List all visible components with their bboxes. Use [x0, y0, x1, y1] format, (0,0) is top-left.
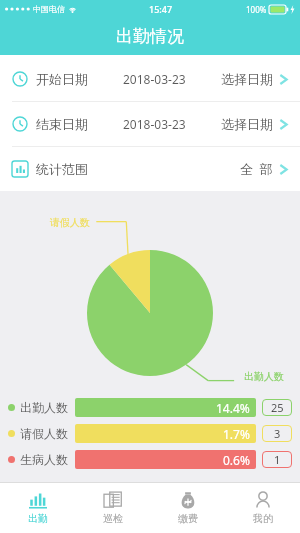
staticText: 选择日期: [221, 71, 273, 87]
staticText: 巡检: [103, 512, 123, 525]
staticText: 出勤人数: [244, 370, 284, 383]
staticText: 1.7%: [223, 426, 250, 442]
button[interactable]: 开始日期: [0, 57, 300, 101]
staticText: 3: [274, 426, 281, 441]
staticText: 2018-03-23: [123, 71, 186, 87]
staticText: 2018-03-23: [123, 116, 186, 132]
staticText: 25: [271, 400, 284, 415]
staticText: 出勤人数: [20, 400, 68, 415]
button[interactable]: 我的: [225, 483, 300, 533]
staticText: 请假人数: [20, 426, 68, 441]
staticText: 我的: [253, 512, 273, 525]
button[interactable]: 结束日期: [0, 102, 300, 146]
staticText: 请假人数: [50, 216, 90, 229]
button[interactable]: 巡检: [75, 483, 150, 533]
staticText: 出勤情况: [116, 26, 184, 47]
staticText: 生病人数: [20, 452, 68, 467]
staticText: 0.6%: [223, 452, 250, 468]
staticText: 中国电信: [33, 4, 65, 14]
staticText: 全 部: [240, 160, 273, 178]
button[interactable]: 统计范围: [0, 147, 300, 191]
staticText: 1: [274, 452, 281, 467]
staticText: 缴费: [178, 512, 198, 525]
staticText: 出勤: [28, 512, 48, 525]
staticText: 开始日期: [36, 71, 88, 87]
staticText: 选择日期: [221, 116, 273, 132]
button[interactable]: 出勤人数: [8, 397, 292, 418]
staticText: 100%: [246, 4, 267, 15]
button[interactable]: 生病人数: [8, 449, 292, 470]
button[interactable]: 请假人数: [8, 423, 292, 444]
staticText: 统计范围: [36, 161, 88, 177]
button[interactable]: 缴费: [150, 483, 225, 533]
staticText: 15:47: [149, 3, 173, 15]
button[interactable]: 出勤: [0, 483, 75, 533]
staticText: 14.4%: [216, 400, 250, 416]
staticText: 结束日期: [36, 116, 88, 132]
